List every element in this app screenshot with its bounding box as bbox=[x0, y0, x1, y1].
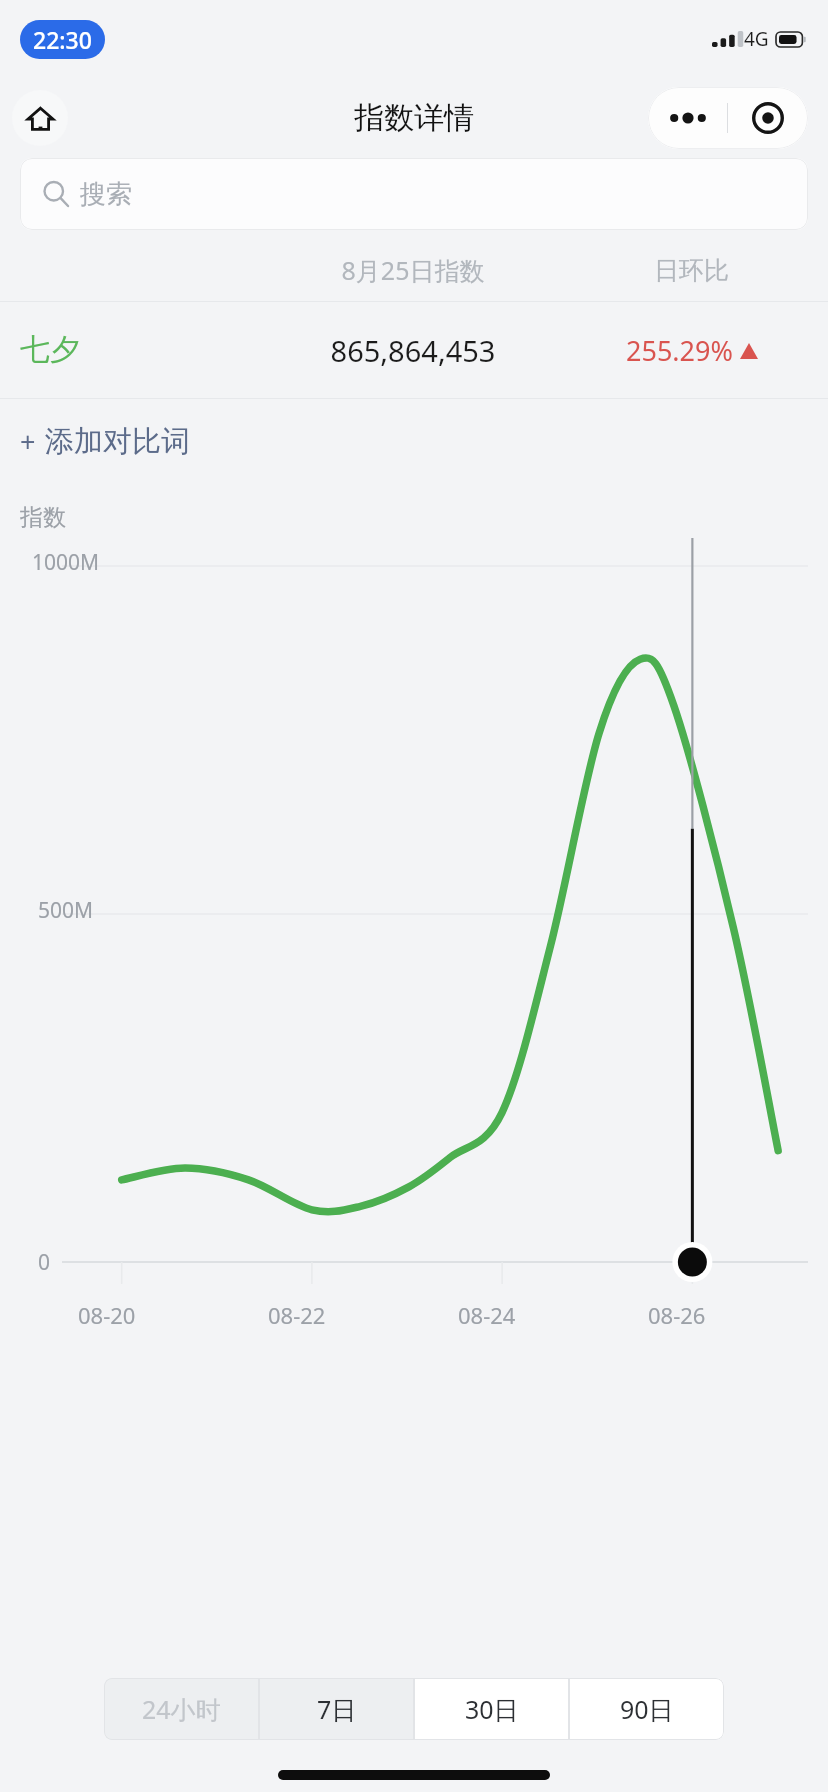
button[interactable]: 24小时 bbox=[104, 1678, 259, 1740]
staticText: 90日 bbox=[620, 1692, 674, 1726]
button[interactable]: 7日 bbox=[259, 1678, 414, 1740]
button[interactable]: Target bbox=[728, 87, 808, 149]
staticText: 22:30 bbox=[33, 24, 92, 55]
staticText: 1000M bbox=[32, 548, 100, 577]
staticText: 30日 bbox=[465, 1692, 519, 1726]
staticText: 添加对比词 bbox=[45, 423, 190, 460]
staticText: 4G bbox=[744, 26, 769, 52]
button[interactable]: Home bbox=[12, 90, 68, 146]
staticText: 7日 bbox=[317, 1692, 357, 1726]
staticText: 搜索 bbox=[80, 178, 132, 211]
button[interactable]: + bbox=[0, 399, 828, 483]
button[interactable]: 搜索 bbox=[20, 158, 808, 230]
staticText: 8月25日指数 bbox=[249, 253, 577, 287]
staticText: 0 bbox=[38, 1248, 51, 1277]
staticText: 指数详情 bbox=[354, 99, 474, 137]
staticText: 指数 bbox=[20, 503, 66, 532]
staticText: 865,864,453 bbox=[249, 331, 577, 370]
staticText: 500M bbox=[38, 896, 94, 925]
staticText: 日环比 bbox=[577, 255, 806, 286]
staticText: 08-24 bbox=[458, 1300, 516, 1330]
button[interactable]: More bbox=[648, 87, 727, 149]
button[interactable]: 七夕 bbox=[0, 302, 828, 398]
staticText: 24小时 bbox=[142, 1692, 221, 1726]
staticText: 七夕 bbox=[20, 331, 249, 369]
staticText: 255.29% bbox=[626, 332, 733, 369]
staticText: + bbox=[20, 423, 36, 460]
staticText: 08-22 bbox=[268, 1300, 326, 1330]
staticText: 08-26 bbox=[648, 1300, 706, 1330]
button[interactable]: 30日 bbox=[414, 1678, 569, 1740]
staticText: 08-20 bbox=[78, 1300, 136, 1330]
button[interactable]: 90日 bbox=[569, 1678, 724, 1740]
